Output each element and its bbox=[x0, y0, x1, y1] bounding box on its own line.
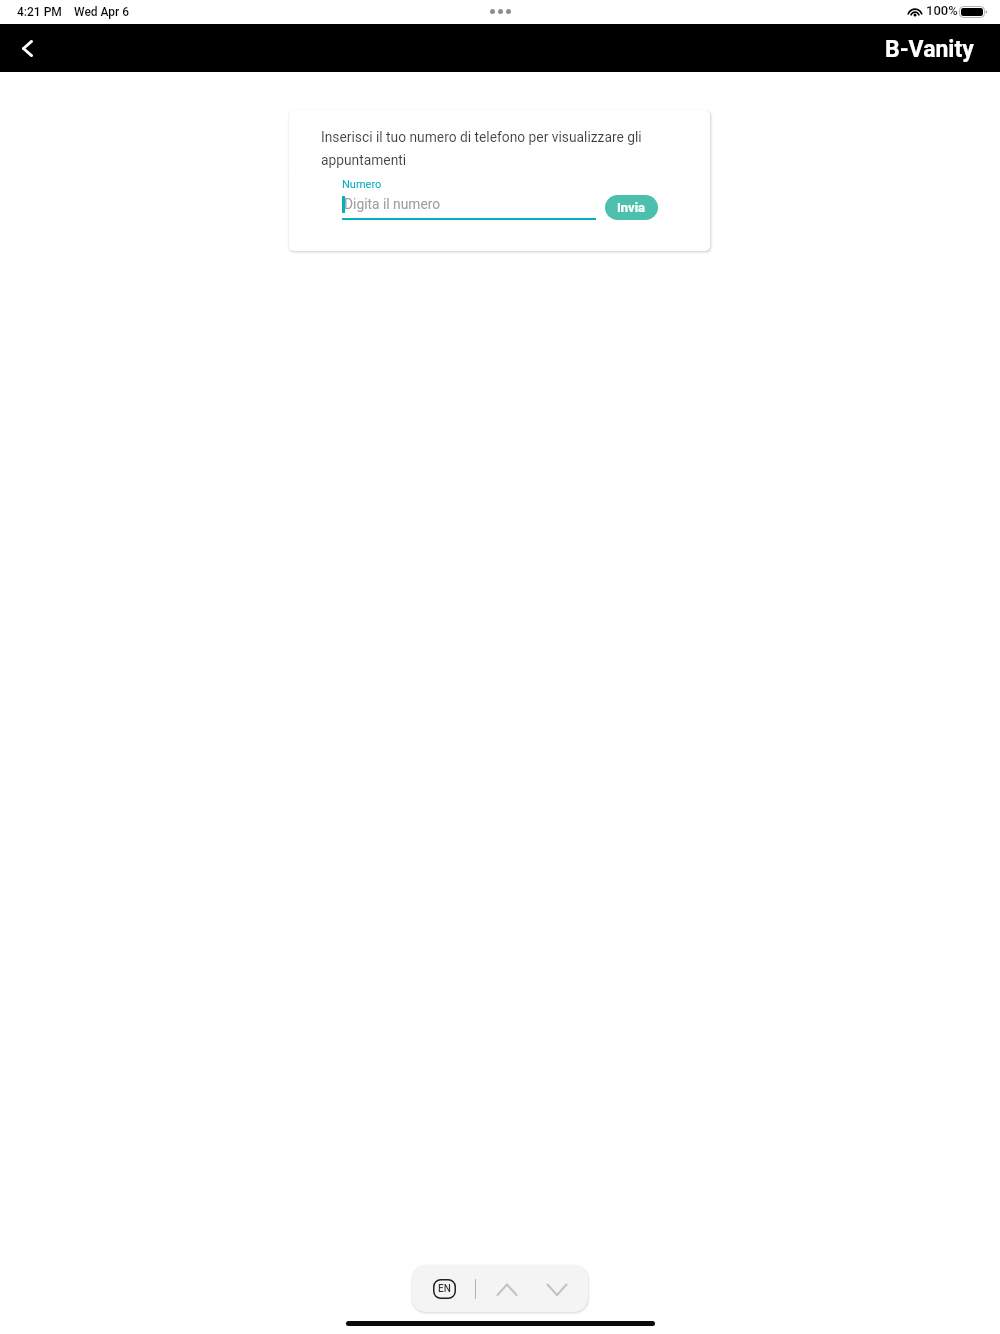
staticText: Inserisci il tuo numero di telefono per … bbox=[321, 129, 651, 169]
button[interactable]: Language EN bbox=[433, 1279, 456, 1299]
button[interactable]: Invia bbox=[605, 195, 658, 220]
staticText: EN bbox=[438, 1283, 451, 1295]
staticText: Digita il numero bbox=[344, 196, 441, 212]
button[interactable]: Previous field bbox=[491, 1277, 523, 1301]
staticText: Numero bbox=[342, 178, 382, 191]
staticText: Invia bbox=[617, 200, 646, 215]
staticText: Wed Apr 6 bbox=[74, 5, 130, 19]
button[interactable]: Next field bbox=[541, 1277, 573, 1301]
button[interactable]: B-Vanity bbox=[885, 24, 1000, 72]
staticText: 4:21 PM bbox=[17, 5, 62, 19]
staticText: 100% bbox=[926, 3, 958, 18]
staticText: B-Vanity bbox=[885, 36, 974, 63]
button[interactable]: Back bbox=[0, 24, 54, 72]
